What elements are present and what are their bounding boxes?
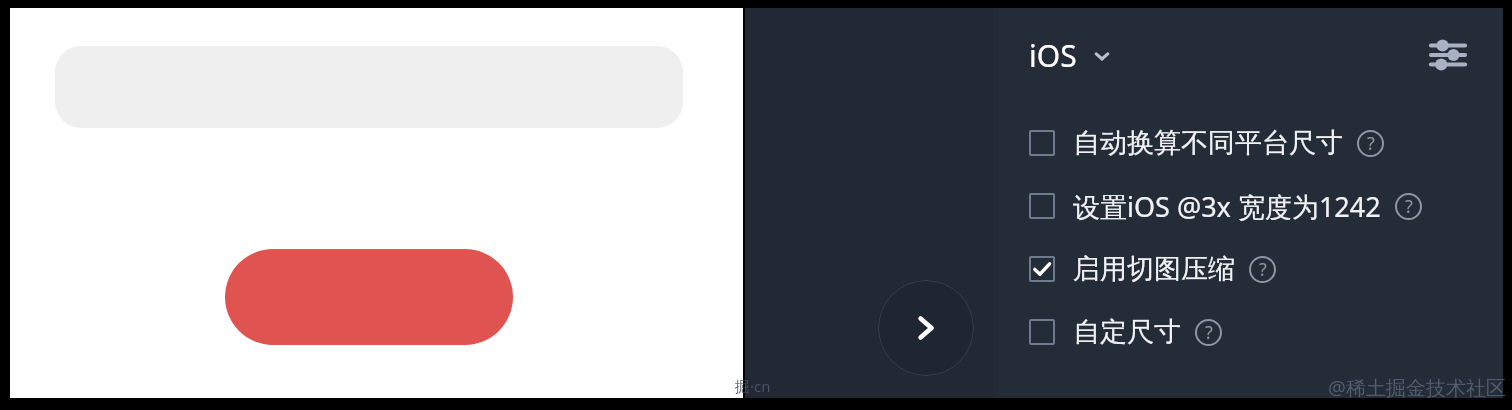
button[interactable]: 启用切图压缩: [1023, 247, 1282, 291]
button[interactable]: iOS: [1025, 31, 1115, 80]
staticText: 掘·cn: [735, 376, 771, 396]
staticText: ?: [1405, 194, 1413, 219]
button[interactable]: [225, 249, 513, 345]
button[interactable]: 设置iOS @3x 宽度为1242: [1023, 184, 1428, 228]
staticText: ?: [1205, 320, 1213, 345]
button[interactable]: 自定尺寸: [1023, 310, 1228, 354]
staticText: ?: [1367, 131, 1375, 156]
staticText: iOS: [1029, 35, 1077, 76]
staticText: 自动换算不同平台尺寸: [1073, 126, 1343, 160]
button[interactable]: Settings: [1425, 32, 1471, 78]
staticText: 设置iOS @3x 宽度为1242: [1073, 188, 1381, 225]
staticText: 启用切图压缩: [1073, 252, 1235, 286]
staticText: @稀土掘金技术社区: [1328, 374, 1506, 401]
button[interactable]: 自动换算不同平台尺寸: [1023, 121, 1390, 165]
button[interactable]: Next: [878, 280, 974, 376]
staticText: ?: [1259, 257, 1267, 282]
staticText: 自定尺寸: [1073, 315, 1181, 349]
